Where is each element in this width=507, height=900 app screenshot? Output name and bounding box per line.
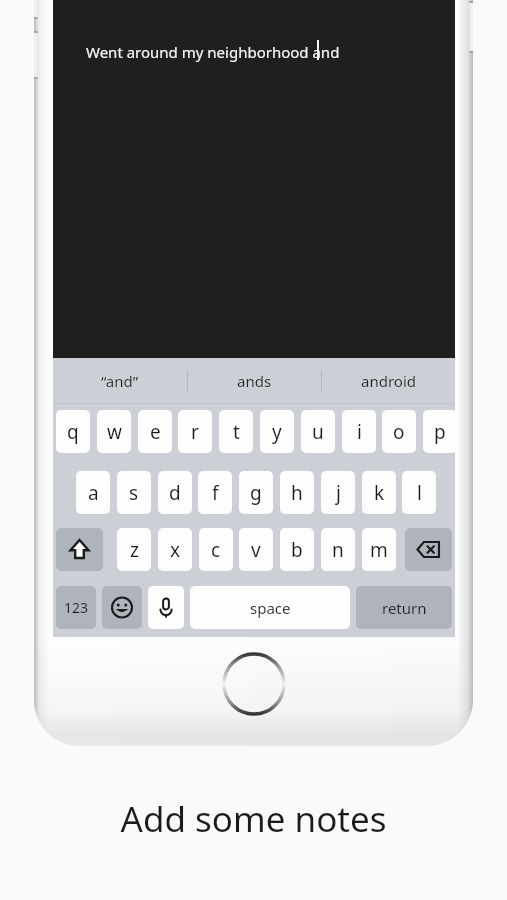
button[interactable]: g [239, 471, 273, 514]
staticText: l [417, 480, 422, 506]
button[interactable]: n [321, 528, 355, 571]
button[interactable]: y [260, 410, 294, 453]
button[interactable]: h [280, 471, 314, 514]
button[interactable]: z [117, 528, 151, 571]
button[interactable]: “and” [53, 358, 187, 403]
staticText: space [250, 598, 291, 618]
staticText: n [332, 537, 344, 563]
staticText: o [393, 419, 405, 445]
staticText: u [312, 419, 324, 445]
staticText: x [170, 537, 181, 563]
button[interactable]: d [158, 471, 192, 514]
button[interactable]: Shift [56, 528, 103, 571]
staticText: v [251, 537, 261, 563]
button[interactable]: v [239, 528, 273, 571]
staticText: Went around my neighborhood and [86, 42, 340, 62]
staticText: p [434, 419, 446, 445]
button[interactable]: i [342, 410, 376, 453]
staticText: a [88, 480, 99, 506]
button[interactable]: return [356, 586, 452, 629]
staticText: k [374, 480, 385, 506]
staticText: android [361, 371, 416, 391]
staticText: e [150, 419, 161, 445]
button[interactable]: u [301, 410, 335, 453]
staticText: b [291, 537, 303, 563]
button[interactable]: r [178, 410, 212, 453]
staticText: ands [237, 371, 272, 391]
staticText: s [129, 480, 139, 506]
staticText: f [212, 480, 219, 506]
button[interactable]: e [138, 410, 172, 453]
button[interactable]: j [321, 471, 355, 514]
staticText: y [272, 419, 282, 445]
button[interactable]: Dictate [148, 586, 184, 629]
button[interactable]: k [362, 471, 396, 514]
staticText: Add some notes [0, 795, 507, 843]
staticText: h [291, 480, 303, 506]
staticText: d [169, 480, 181, 506]
button[interactable]: q [56, 410, 90, 453]
staticText: q [67, 419, 79, 445]
staticText: 123 [64, 598, 89, 617]
button[interactable]: ands [188, 358, 321, 403]
button[interactable]: android [322, 358, 455, 403]
staticText: w [107, 419, 122, 445]
staticText: i [357, 419, 362, 445]
staticText: r [191, 419, 199, 445]
button[interactable]: x [158, 528, 192, 571]
button[interactable]: f [198, 471, 232, 514]
button[interactable]: a [76, 471, 110, 514]
button[interactable]: Home [220, 650, 288, 718]
staticText: t [233, 419, 240, 445]
button[interactable]: p [423, 410, 457, 453]
button[interactable]: Emoji [102, 586, 142, 629]
button[interactable]: s [117, 471, 151, 514]
staticText: g [250, 480, 262, 506]
staticText: m [370, 537, 388, 563]
staticText: “and” [101, 371, 139, 391]
button[interactable]: c [199, 528, 233, 571]
staticText: c [211, 537, 221, 563]
button[interactable]: w [97, 410, 131, 453]
button[interactable]: t [219, 410, 253, 453]
staticText: z [130, 537, 139, 563]
button[interactable]: 123 [56, 586, 96, 629]
staticText: return [382, 598, 427, 618]
button[interactable]: m [362, 528, 396, 571]
staticText: j [336, 480, 341, 506]
button[interactable]: Delete [405, 528, 452, 571]
button[interactable]: o [382, 410, 416, 453]
button[interactable]: l [402, 471, 436, 514]
button[interactable]: space [190, 586, 350, 629]
button[interactable]: b [280, 528, 314, 571]
